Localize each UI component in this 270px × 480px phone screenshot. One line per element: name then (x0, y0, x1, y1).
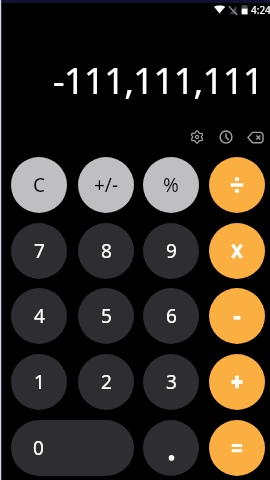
button[interactable]: Divide (209, 157, 265, 213)
button[interactable]: +/- (78, 157, 134, 213)
staticText: 3 (166, 369, 177, 395)
button[interactable]: 7 (11, 223, 67, 279)
button[interactable]: 3 (143, 354, 199, 410)
staticText: 6 (166, 303, 177, 329)
staticText: -111,111,111 (52, 54, 263, 104)
button[interactable]: 4 (11, 288, 67, 344)
staticText: 4:24 (251, 3, 270, 17)
button[interactable]: 8 (78, 223, 134, 279)
staticText: +/- (94, 172, 119, 198)
button[interactable]: % (143, 157, 199, 213)
staticText: 8 (101, 238, 112, 264)
button[interactable]: Equals (209, 420, 265, 476)
staticText: 9 (166, 238, 177, 264)
button[interactable]: Plus (209, 354, 265, 410)
staticText: C (33, 172, 46, 198)
staticText: % (163, 172, 179, 198)
button[interactable]: History (215, 126, 237, 148)
staticText: 1 (34, 369, 45, 395)
button[interactable]: Minus (209, 288, 265, 344)
staticText: 4 (34, 303, 45, 329)
button[interactable]: Settings (186, 126, 208, 148)
staticText: 0 (33, 435, 44, 461)
button[interactable]: 0 (11, 420, 134, 476)
button[interactable]: X (209, 223, 265, 279)
staticText: 2 (101, 369, 112, 395)
staticText: 7 (34, 238, 45, 264)
button[interactable]: C (11, 157, 67, 213)
button[interactable]: 2 (78, 354, 134, 410)
button[interactable]: 9 (143, 223, 199, 279)
button[interactable]: 6 (143, 288, 199, 344)
button[interactable]: 1 (11, 354, 67, 410)
button[interactable]: 5 (78, 288, 134, 344)
button[interactable]: Decimal point (143, 420, 199, 476)
staticText: 5 (101, 303, 112, 329)
button[interactable]: Delete (244, 126, 266, 148)
